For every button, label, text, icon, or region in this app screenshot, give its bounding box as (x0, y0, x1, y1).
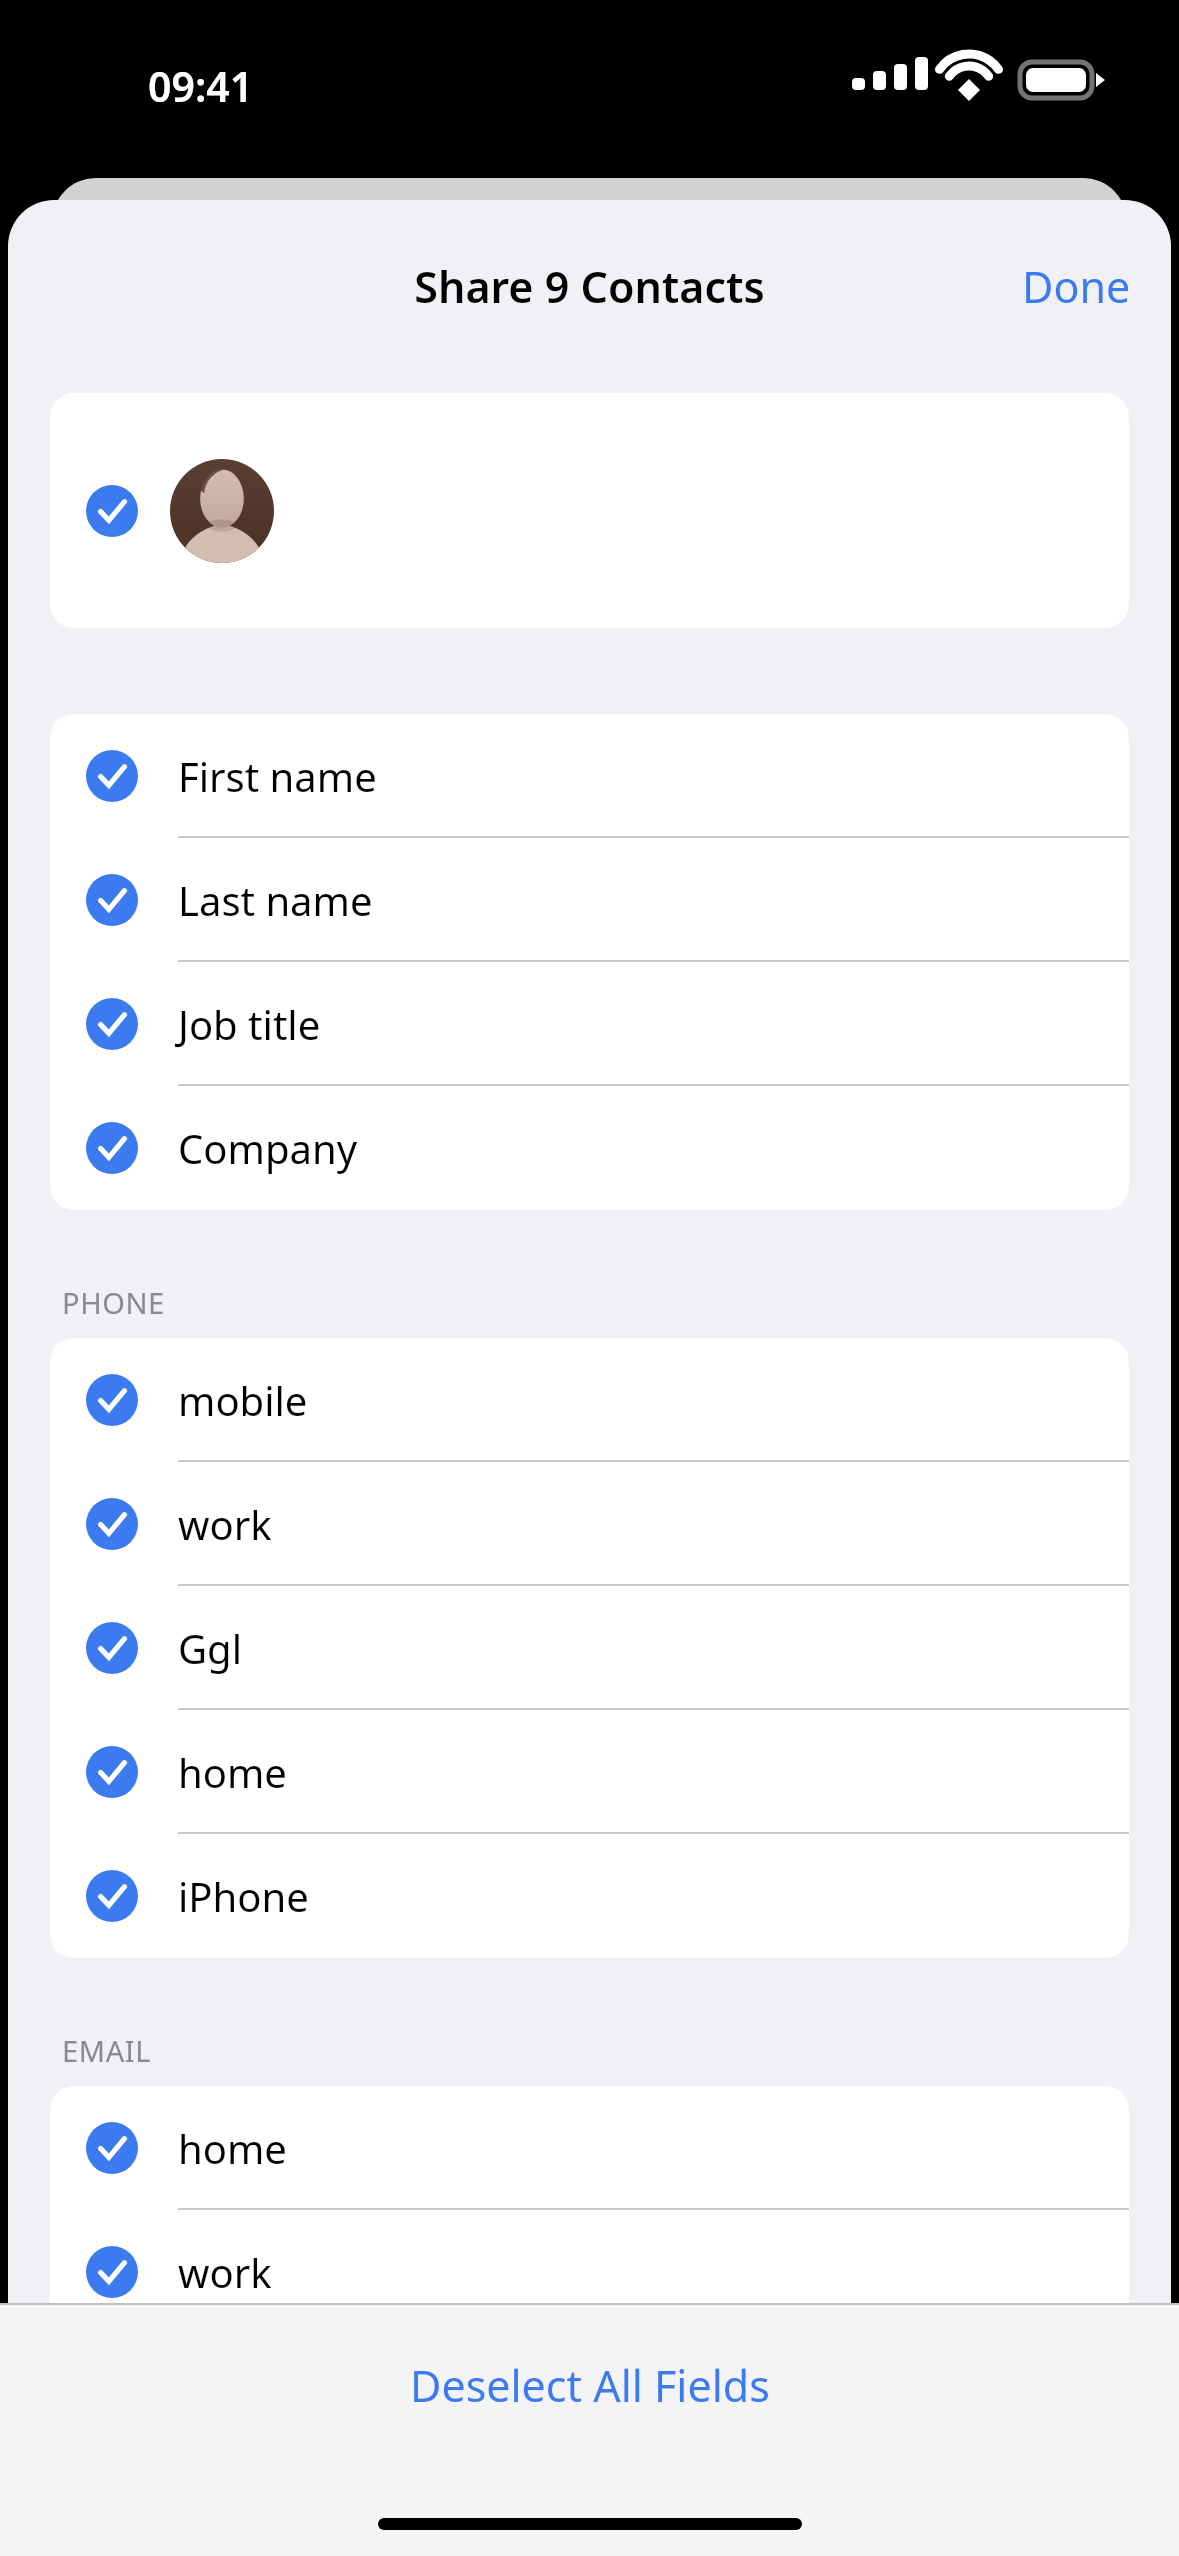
staticText: work (178, 2245, 272, 2299)
staticText: Share 9 Contacts (8, 257, 1171, 316)
staticText: EMAIL (62, 2031, 151, 2070)
button[interactable]: Ggl (50, 1586, 1129, 1710)
staticText: Done (1022, 257, 1131, 316)
button[interactable]: home (50, 2086, 1129, 2210)
button[interactable]: Done (1004, 245, 1149, 328)
staticText: home (178, 1745, 287, 1799)
staticText: iPhone (178, 1869, 309, 1923)
button[interactable]: First name (50, 714, 1129, 838)
button[interactable]: Job title (50, 962, 1129, 1086)
button[interactable]: mobile (50, 1338, 1129, 1462)
staticText: Last name (178, 873, 373, 927)
staticText: home (178, 2121, 287, 2175)
button[interactable]: home (50, 1710, 1129, 1834)
staticText: Deselect All Fields (410, 2356, 770, 2415)
staticText: mobile (178, 1373, 308, 1427)
staticText: 09:41 (148, 58, 254, 114)
staticText: First name (178, 749, 377, 803)
staticText: PHONE (62, 1283, 165, 1322)
button[interactable] (50, 393, 1129, 628)
button[interactable]: Last name (50, 838, 1129, 962)
button[interactable]: work (50, 1462, 1129, 1586)
button[interactable]: work (50, 2210, 1129, 2334)
button[interactable]: Company (50, 1086, 1129, 1210)
button[interactable]: Deselect All Fields (0, 2305, 1179, 2465)
staticText: Job title (178, 997, 321, 1051)
button[interactable]: iPhone (50, 1834, 1129, 1958)
staticText: Company (178, 1121, 358, 1175)
staticText: work (178, 1497, 272, 1551)
staticText: Ggl (178, 1621, 243, 1675)
